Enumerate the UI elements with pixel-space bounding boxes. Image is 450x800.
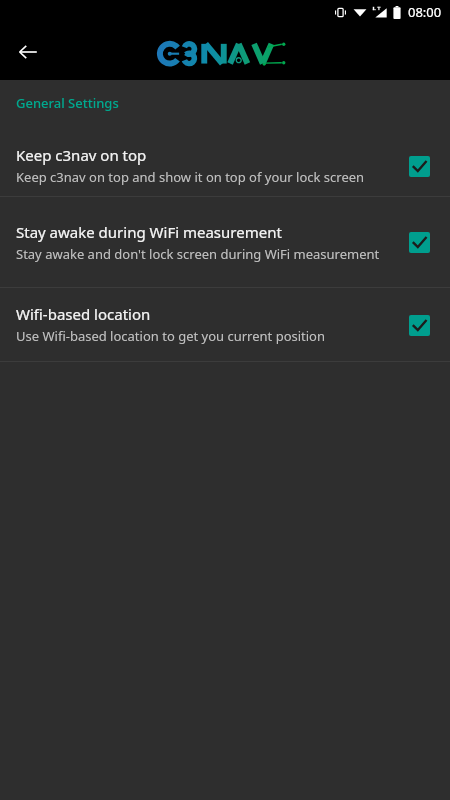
staticText: General Settings	[16, 94, 119, 112]
staticText: Stay awake during WiFi measurement	[16, 222, 282, 242]
staticText: Stay awake and don't lock screen during …	[16, 245, 380, 263]
button[interactable]: Toggle setting	[404, 310, 434, 340]
staticText: Keep c3nav on top and show it on top of …	[16, 168, 365, 186]
staticText: 08:00	[408, 3, 442, 21]
button[interactable]: Back	[8, 32, 48, 72]
staticText: Wifi-based location	[16, 304, 151, 324]
staticText: Use Wifi-based location to get you curre…	[16, 327, 326, 345]
button[interactable]: Toggle setting	[404, 151, 434, 181]
staticText: Keep c3nav on top	[16, 145, 147, 165]
button[interactable]: Keep c3nav on top	[0, 135, 450, 196]
button[interactable]: Stay awake during WiFi measurement	[0, 197, 450, 287]
button[interactable]: Toggle setting	[404, 227, 434, 257]
button[interactable]: Wifi-based location	[0, 288, 450, 361]
